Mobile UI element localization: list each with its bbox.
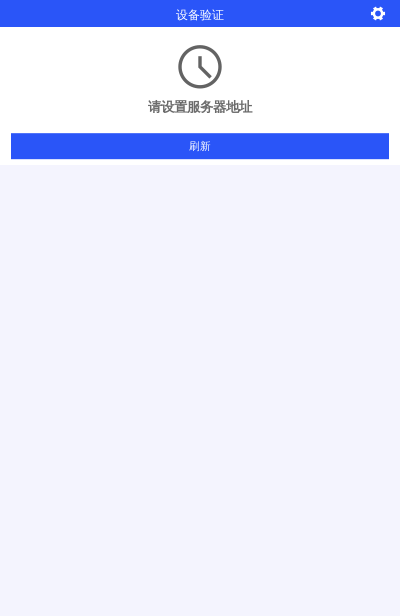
- button[interactable]: Settings: [356, 0, 400, 27]
- button[interactable]: 刷新: [11, 133, 389, 159]
- staticText: 刷新: [189, 140, 211, 153]
- staticText: 请设置服务器地址: [148, 99, 252, 115]
- staticText: 设备验证: [176, 8, 224, 22]
